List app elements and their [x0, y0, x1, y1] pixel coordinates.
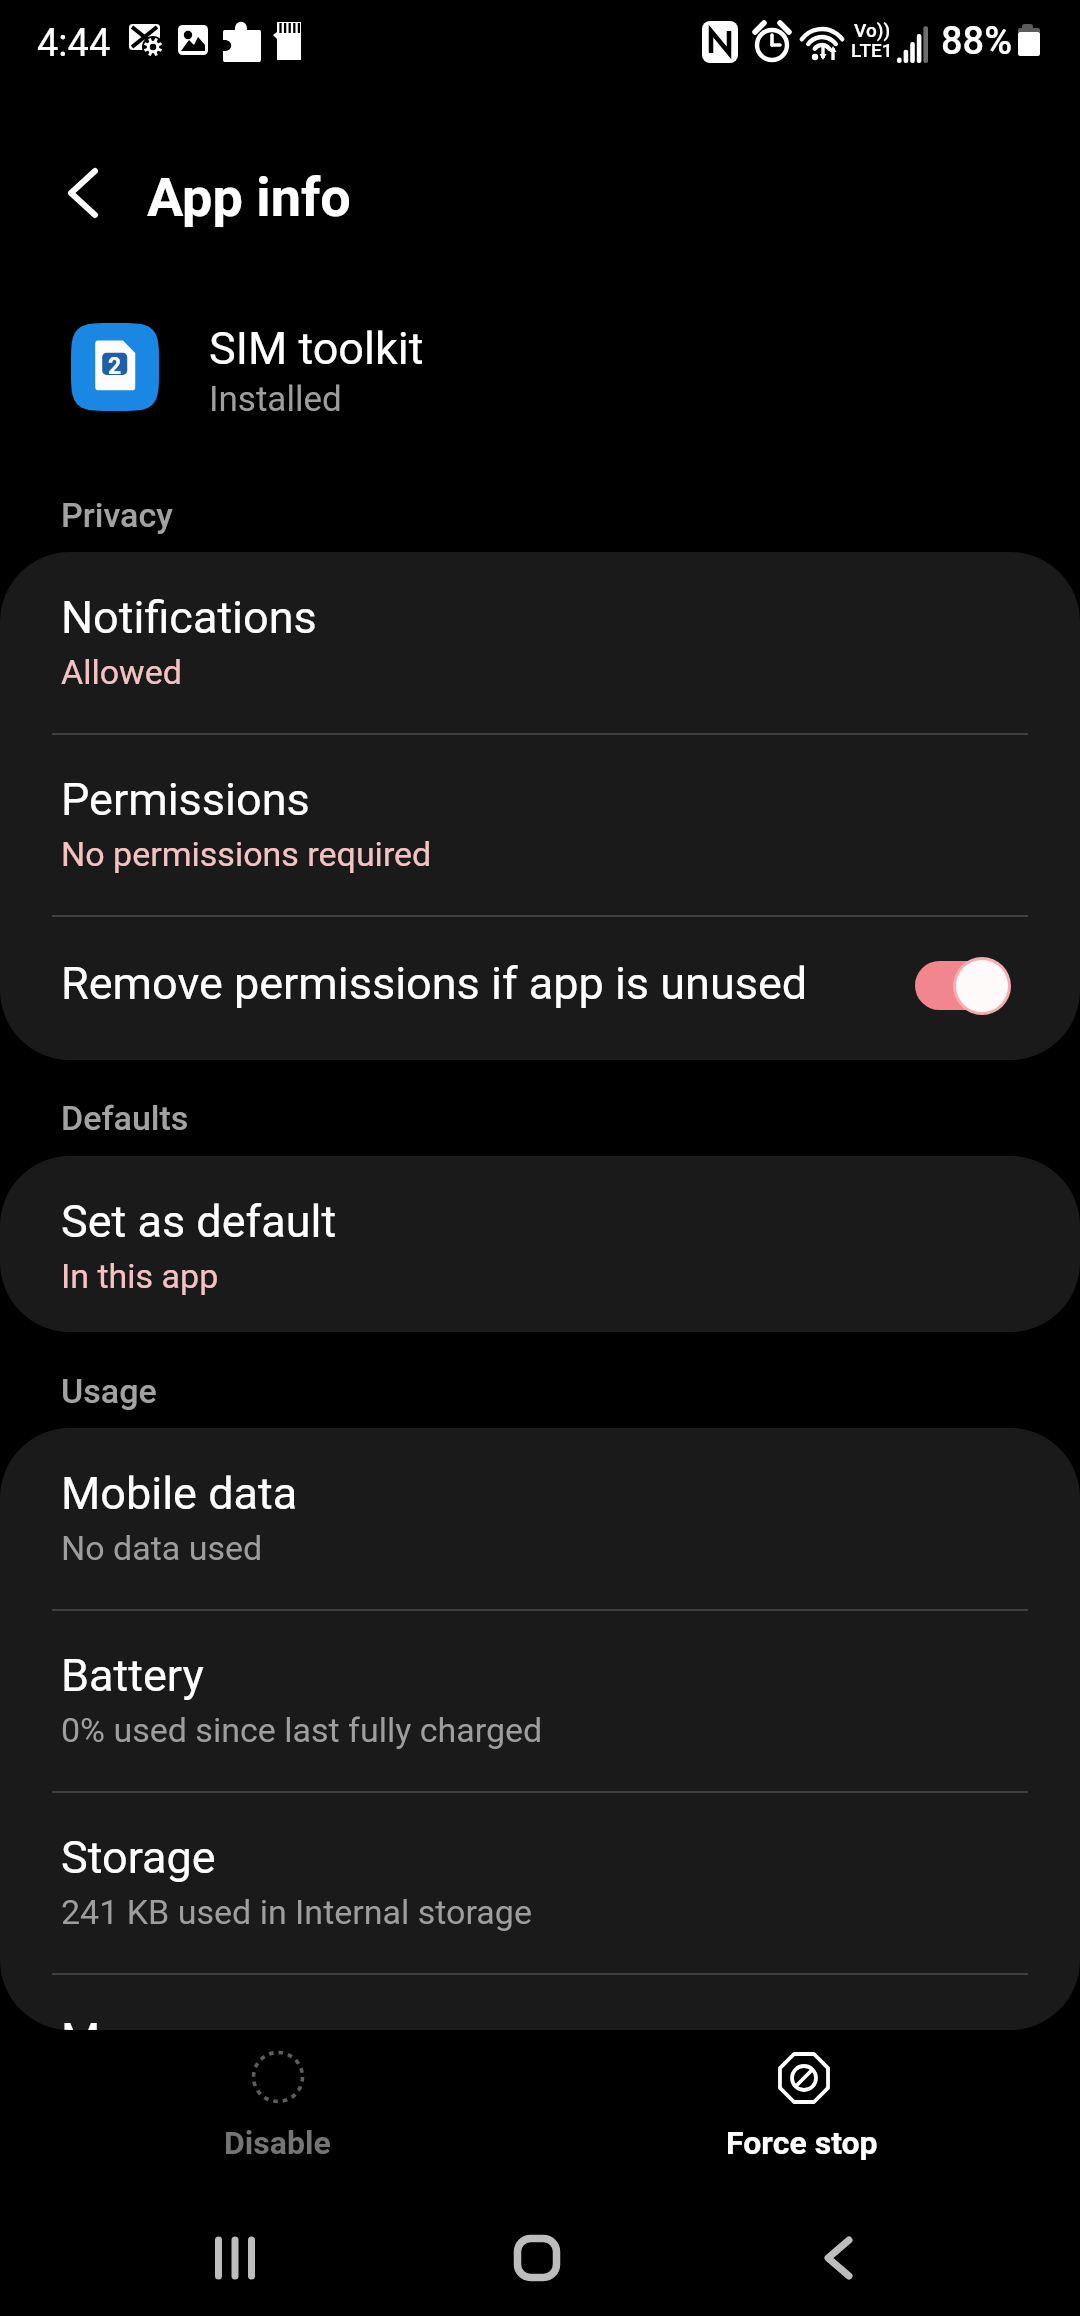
staticText: Privacy: [61, 495, 173, 535]
button[interactable]: Force stop: [540, 2032, 1080, 2196]
staticText: Set as default: [61, 1195, 337, 1248]
staticText: Vo)): [854, 19, 891, 41]
staticText: Storage: [61, 1831, 216, 1884]
staticText: Disable: [224, 2124, 331, 2162]
staticText: Mobile data: [61, 1467, 298, 1520]
button[interactable]: Remove permissions if app is unused: [0, 916, 1080, 1060]
staticText: 2: [108, 353, 122, 375]
staticText: Remove permissions if app is unused: [61, 957, 808, 1010]
staticText: Memory: [61, 2013, 227, 2030]
staticText: Usage: [61, 1371, 157, 1411]
button[interactable]: Permissions: [0, 734, 1080, 915]
button[interactable]: Storage: [0, 1792, 1080, 1973]
button[interactable]: Battery: [0, 1610, 1080, 1791]
staticText: Allowed: [61, 652, 182, 692]
staticText: App info: [147, 166, 351, 229]
staticText: In this app: [61, 1256, 219, 1296]
staticText: LTE1: [851, 39, 893, 61]
staticText: Force stop: [726, 2124, 878, 2162]
staticText: Battery: [61, 1649, 204, 1702]
button[interactable]: Recent apps: [145, 2200, 325, 2316]
staticText: Permissions: [61, 773, 310, 826]
button[interactable]: Set as default: [0, 1156, 1080, 1332]
staticText: 4:44: [37, 21, 111, 66]
button[interactable]: Disable: [0, 2032, 540, 2196]
staticText: 0% used since last fully charged: [61, 1710, 543, 1750]
staticText: Defaults: [61, 1098, 189, 1138]
staticText: 88%: [941, 19, 1013, 64]
staticText: 241 KB used in Internal storage: [61, 1892, 532, 1932]
button[interactable]: 2: [0, 290, 1080, 444]
staticText: No permissions required: [61, 834, 432, 874]
button[interactable]: Home: [447, 2200, 627, 2316]
button[interactable]: Memory: [0, 1974, 1080, 2030]
staticText: Installed: [209, 379, 342, 420]
button[interactable]: Notifications: [0, 552, 1080, 733]
staticText: Notifications: [61, 591, 317, 644]
staticText: SIM toolkit: [209, 322, 424, 375]
staticText: No data used: [61, 1528, 263, 1568]
button[interactable]: Back: [749, 2200, 929, 2316]
button[interactable]: Mobile data: [0, 1428, 1080, 1609]
button[interactable]: Navigate up: [37, 148, 127, 238]
